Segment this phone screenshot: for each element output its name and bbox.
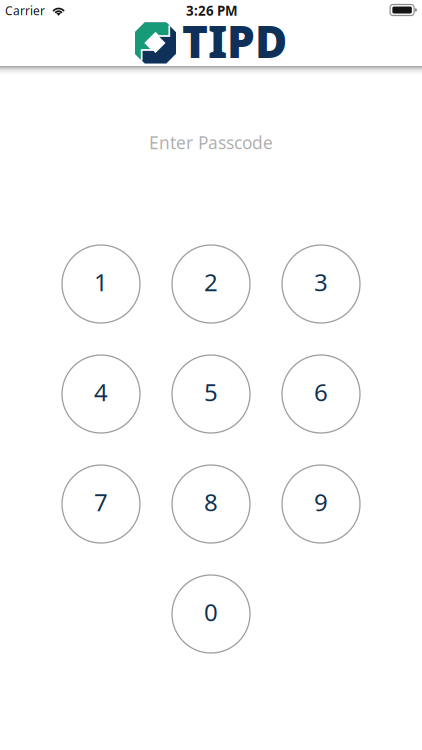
staticText: 0 xyxy=(204,596,218,628)
staticText: 9 xyxy=(314,486,328,518)
button[interactable]: 0 xyxy=(172,575,250,653)
button[interactable]: 5 xyxy=(172,355,250,433)
staticText: 4 xyxy=(94,376,108,408)
staticText: 7 xyxy=(94,486,108,518)
staticText: 5 xyxy=(204,376,218,408)
button[interactable]: 2 xyxy=(172,245,250,323)
button[interactable]: 3 xyxy=(282,245,360,323)
button[interactable]: 4 xyxy=(62,355,140,433)
button[interactable]: 9 xyxy=(282,465,360,543)
staticText: TIPD xyxy=(182,12,287,70)
button[interactable]: 8 xyxy=(172,465,250,543)
staticText: 8 xyxy=(204,486,218,518)
button[interactable]: 1 xyxy=(62,245,140,323)
staticText: Enter Passcode xyxy=(149,131,273,154)
button[interactable]: 7 xyxy=(62,465,140,543)
staticText: 2 xyxy=(204,266,218,298)
staticText: 6 xyxy=(314,376,328,408)
staticText: 1 xyxy=(94,266,108,298)
staticText: Carrier xyxy=(5,2,45,18)
staticText: 3 xyxy=(314,266,328,298)
button[interactable]: 6 xyxy=(282,355,360,433)
staticText: 3:26 PM xyxy=(186,2,238,19)
